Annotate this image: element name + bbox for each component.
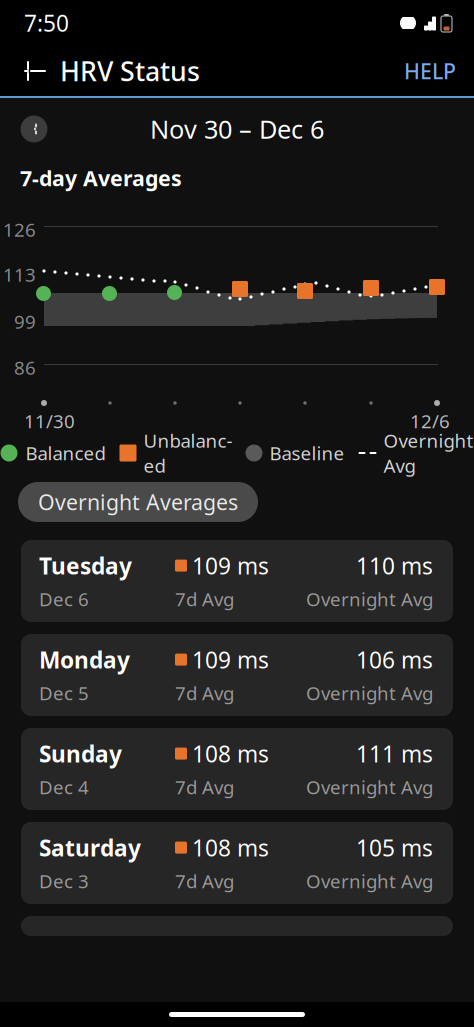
staticText: 110 ms — [356, 551, 433, 581]
staticText: 7d Avg — [175, 775, 234, 799]
button[interactable]: Back — [6, 46, 60, 96]
button[interactable]: Tuesday — [21, 540, 453, 622]
staticText: Balanced — [25, 441, 105, 465]
staticText: 113 — [3, 262, 36, 287]
staticText: Sunday — [39, 739, 122, 769]
staticText: 99 — [14, 309, 36, 334]
staticText: 108 ms — [192, 833, 269, 863]
staticText: 109 ms — [192, 645, 269, 675]
staticText: 108 ms — [192, 739, 269, 769]
staticText: 126 — [3, 217, 36, 242]
staticText: Monday — [39, 645, 130, 675]
staticText: Overnight Avg — [383, 428, 473, 478]
staticText: Overnight Avg — [306, 775, 433, 799]
button[interactable]: Saturday — [21, 822, 453, 904]
staticText: Dec 6 — [39, 587, 89, 611]
staticText: 7:50 — [24, 8, 69, 38]
staticText: Dec 3 — [39, 869, 89, 893]
staticText: 111 ms — [356, 739, 433, 769]
staticText: Nov 30 – Dec 6 — [150, 112, 324, 146]
staticText: 7d Avg — [175, 869, 234, 893]
staticText: HELP — [404, 57, 456, 85]
button[interactable]: Monday — [21, 634, 453, 716]
staticText: HRV Status — [60, 53, 200, 89]
staticText: 105 ms — [356, 833, 433, 863]
staticText: Dec 4 — [39, 775, 89, 799]
button[interactable]: Overnight Averages — [18, 482, 258, 522]
staticText: Overnight Averages — [38, 488, 238, 516]
staticText: 86 — [14, 355, 36, 380]
staticText: Overnight Avg — [306, 869, 433, 893]
staticText: 106 ms — [356, 645, 433, 675]
staticText: Tuesday — [39, 551, 132, 581]
staticText: Unbalanced — [143, 428, 232, 478]
button[interactable]: Previous week — [12, 107, 56, 151]
button[interactable]: Sunday — [21, 728, 453, 810]
staticText: 7-day Averages — [20, 164, 182, 192]
staticText: 7d Avg — [175, 587, 234, 611]
staticText: Baseline — [269, 441, 344, 465]
staticText: Overnight Avg — [306, 681, 433, 705]
staticText: Saturday — [39, 833, 141, 863]
staticText: Dec 5 — [39, 681, 89, 705]
staticText: 11/30 — [24, 409, 75, 433]
button[interactable]: HELP — [386, 46, 474, 96]
staticText: Overnight Avg — [306, 587, 433, 611]
staticText: 12/6 — [410, 409, 450, 433]
staticText: 109 ms — [192, 551, 269, 581]
staticText: 7d Avg — [175, 681, 234, 705]
